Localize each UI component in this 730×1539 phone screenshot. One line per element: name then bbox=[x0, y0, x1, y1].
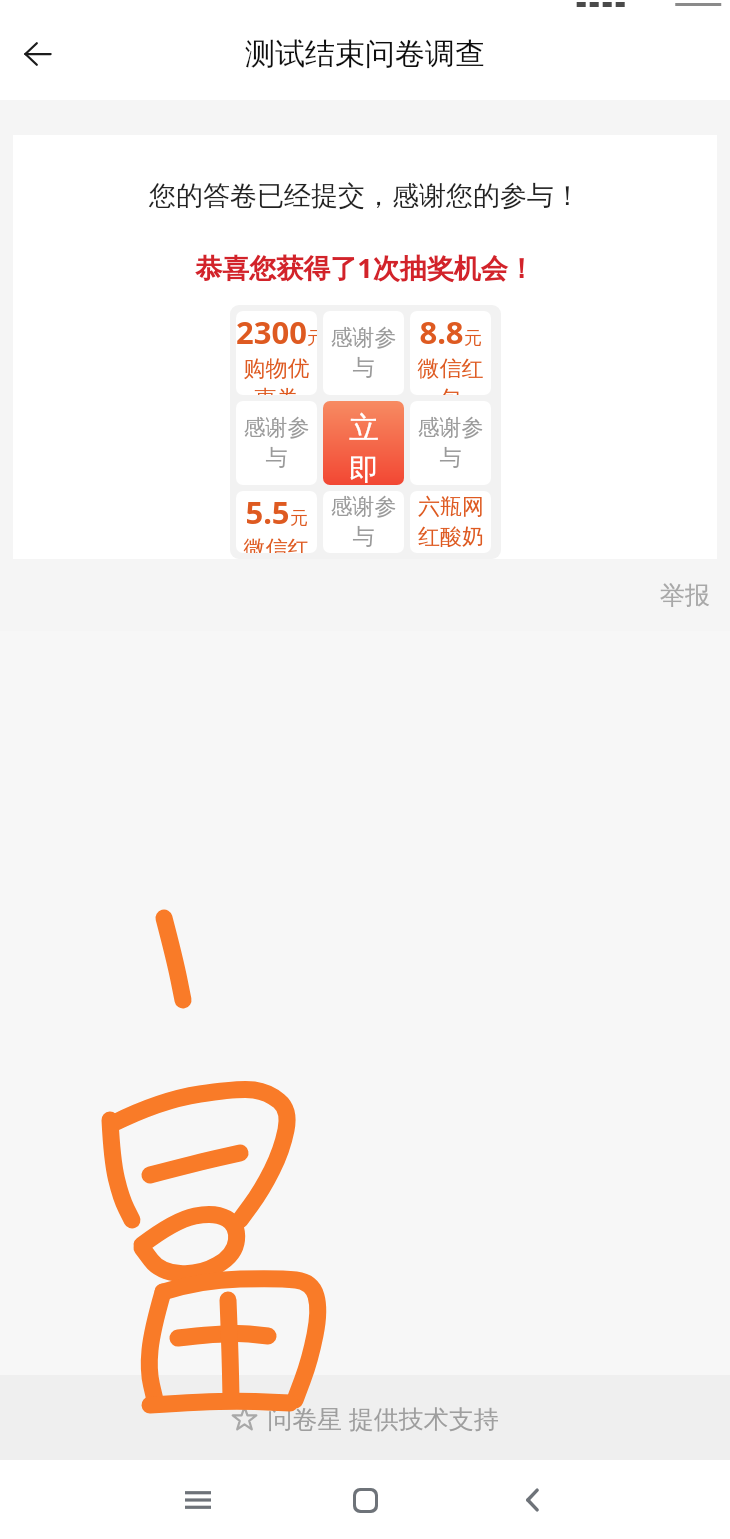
staticText: 元 bbox=[464, 327, 482, 350]
staticText: 8.8 bbox=[419, 311, 464, 353]
button[interactable]: 2300 bbox=[236, 311, 317, 395]
staticText: 问卷星 提供技术支持 bbox=[267, 1401, 499, 1435]
staticText: 感谢参与 bbox=[323, 324, 404, 382]
staticText: 立 bbox=[349, 409, 379, 447]
button[interactable]: 5.5 bbox=[236, 491, 317, 553]
staticText: 恭喜您获得了1次抽奖机会！ bbox=[195, 249, 535, 286]
staticText: 微信红包 bbox=[236, 535, 317, 553]
staticText: 感谢参与 bbox=[410, 414, 491, 472]
button[interactable]: 举报 bbox=[654, 574, 716, 617]
button[interactable]: 感谢参与 bbox=[323, 311, 404, 395]
button[interactable]: 六瓶网红酸奶 bbox=[410, 491, 491, 553]
button[interactable]: 感谢参与 bbox=[410, 401, 491, 485]
staticText: 测试结束问卷调查 bbox=[245, 35, 485, 73]
staticText: 2300 bbox=[236, 311, 307, 353]
staticText: 元 bbox=[290, 507, 308, 530]
staticText: 感谢参与 bbox=[236, 414, 317, 472]
button[interactable]: Home bbox=[333, 1468, 397, 1532]
button[interactable]: Back bbox=[501, 1468, 565, 1532]
button[interactable]: Back bbox=[6, 22, 70, 86]
staticText: 六瓶网红酸奶 bbox=[414, 493, 488, 551]
button[interactable]: 立 bbox=[323, 401, 404, 485]
staticText: 微信红包 bbox=[410, 355, 491, 395]
button[interactable]: 8.8 bbox=[410, 311, 491, 395]
button[interactable]: 感谢参与 bbox=[323, 491, 404, 553]
staticText: 购物优惠券 bbox=[236, 355, 317, 395]
staticText: 感谢参与 bbox=[323, 493, 404, 551]
staticText: 即 bbox=[349, 451, 379, 485]
staticText: 举报 bbox=[660, 580, 710, 611]
button[interactable]: 问卷星 提供技术支持 bbox=[231, 1401, 499, 1435]
staticText: 您的答卷已经提交，感谢您的参与！ bbox=[149, 179, 581, 213]
button[interactable]: Menu bbox=[166, 1468, 230, 1532]
staticText: 元 bbox=[307, 327, 317, 350]
button[interactable]: 感谢参与 bbox=[236, 401, 317, 485]
staticText: 5.5 bbox=[245, 491, 290, 533]
